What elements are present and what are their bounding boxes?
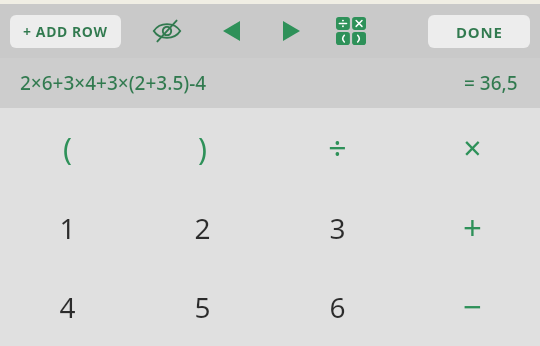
button[interactable]: 3 [270,188,405,267]
button[interactable]: 2×6+3×4+3×(2+3.5)-4 [0,58,540,108]
staticText: DONE [456,22,503,42]
button[interactable]: ) [135,108,270,188]
staticText: ) [198,128,207,169]
staticText: 6 [329,288,346,326]
button[interactable]: + ADD ROW [10,15,121,48]
button[interactable]: 2 [135,188,270,267]
button[interactable]: 5 [135,267,270,346]
staticText: + ADD ROW [23,22,108,41]
staticText: 2 [194,209,211,247]
staticText: ( [63,128,72,169]
staticText: ÷ [328,126,347,170]
button[interactable]: Previous [214,14,248,48]
staticText: × [463,126,482,170]
button[interactable]: 6 [270,267,405,346]
staticText: 1 [59,209,76,247]
button[interactable]: Toggle visibility [148,12,186,50]
button[interactable]: 4 [0,267,135,346]
staticText: 5 [194,288,211,326]
button[interactable]: × [405,108,540,188]
staticText: = 36,5 [464,70,518,96]
button[interactable]: Operator keypad [332,12,370,50]
staticText: − [463,284,482,329]
button[interactable]: ( [0,108,135,188]
staticText: 2×6+3×4+3×(2+3.5)-4 [20,70,207,96]
staticText: 4 [59,288,76,326]
staticText: 3 [329,209,346,247]
button[interactable]: Next [274,14,308,48]
button[interactable]: − [405,267,540,346]
button[interactable]: ÷ [270,108,405,188]
staticText: + [463,205,482,250]
button[interactable]: DONE [428,15,530,48]
button[interactable]: 1 [0,188,135,267]
button[interactable]: + [405,188,540,267]
